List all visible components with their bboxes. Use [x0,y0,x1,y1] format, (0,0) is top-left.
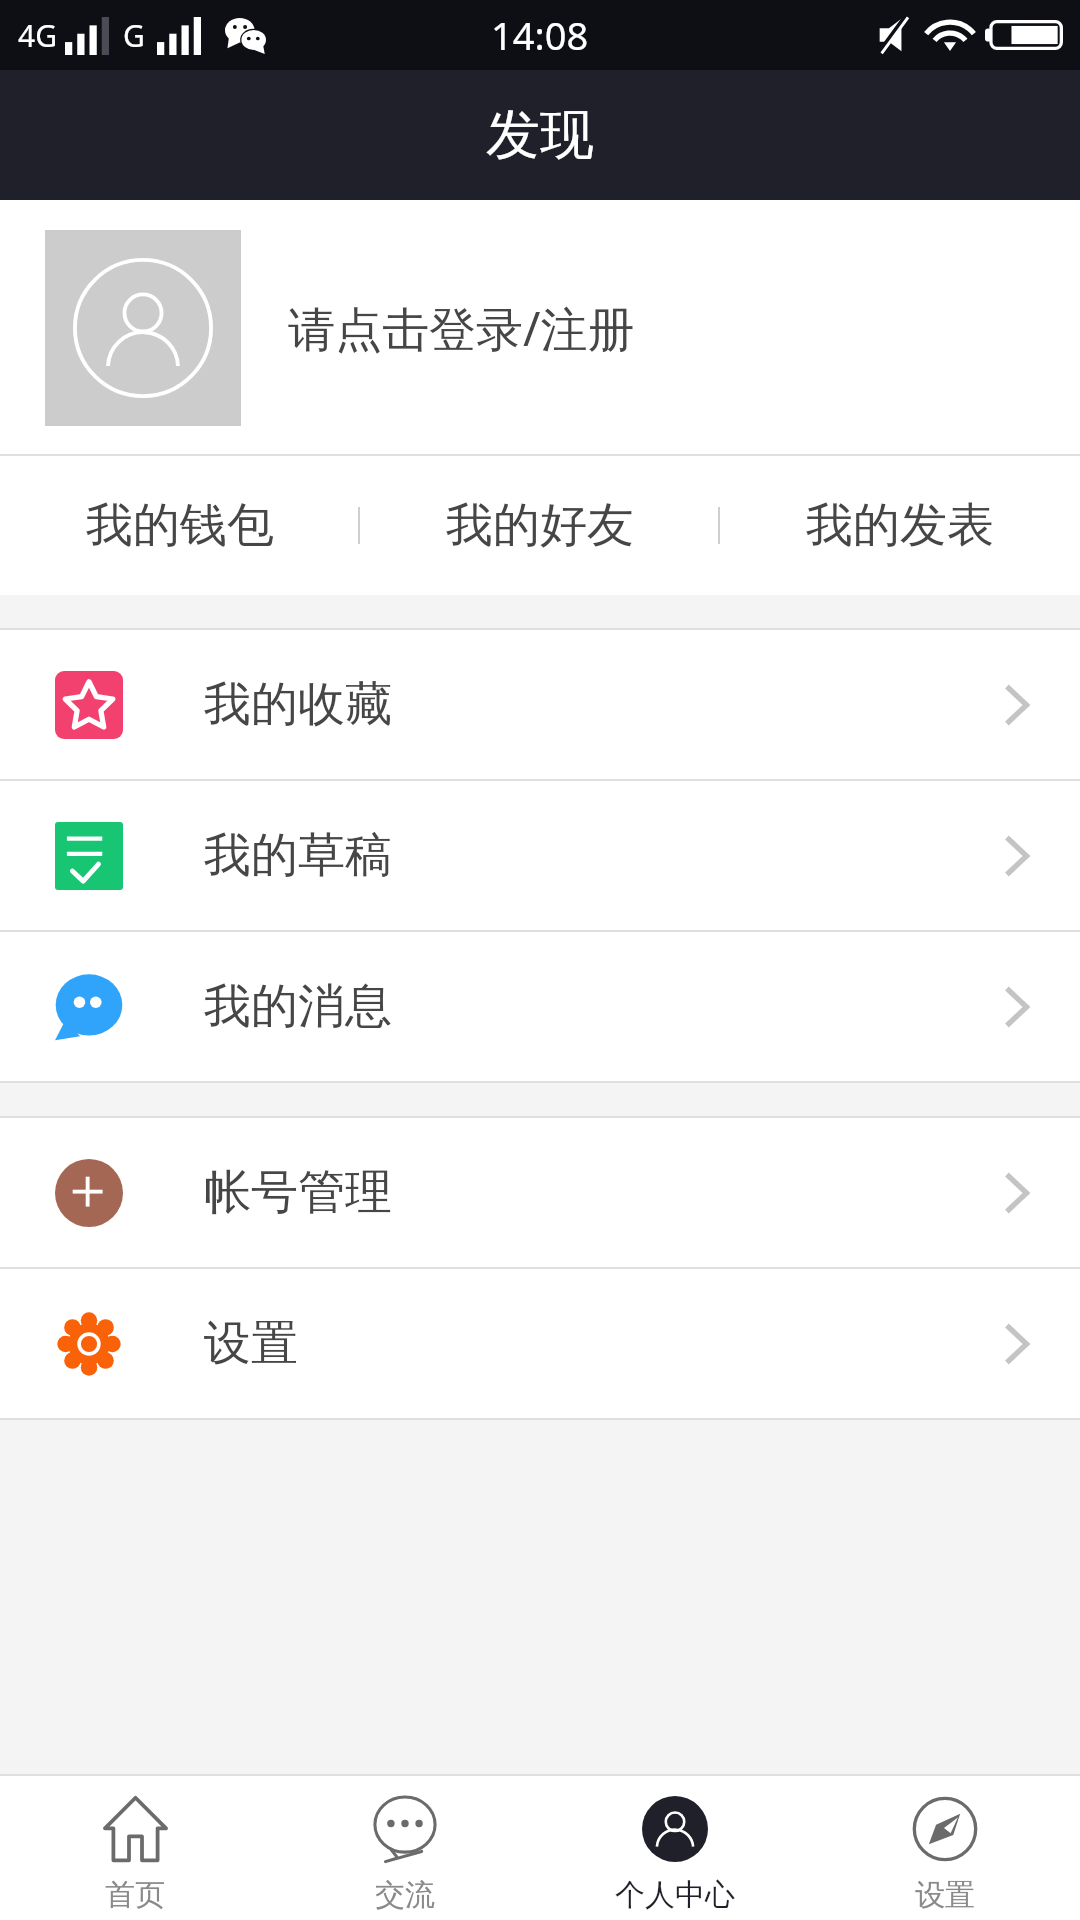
button[interactable]: Settings [0,1269,1080,1418]
staticText: 4G [18,15,57,56]
staticText: 发现 [486,101,594,169]
staticText: 设置 [915,1876,975,1914]
staticText: 我的消息 [204,977,392,1036]
staticText: 请点击登录/注册 [288,296,635,360]
staticText: 设置 [204,1314,298,1373]
staticText: 个人中心 [615,1876,735,1914]
staticText: 我的收藏 [204,675,392,734]
staticText: 我的草稿 [204,826,392,885]
staticText: 我的好友 [446,496,634,555]
button[interactable]: Tap to log in or register [0,200,1080,456]
button[interactable]: My messages [0,932,1080,1081]
button[interactable]: Account management [0,1118,1080,1267]
staticText: 交流 [375,1876,435,1914]
staticText: 帐号管理 [204,1163,392,1222]
button[interactable]: My favourites [0,630,1080,779]
staticText: 首页 [105,1876,165,1914]
button[interactable]: 设置 [810,1776,1080,1920]
staticText: 我的钱包 [86,496,274,555]
staticText: G [123,15,145,56]
button[interactable]: My drafts [0,781,1080,930]
staticText: 我的发表 [806,496,994,555]
button[interactable]: 个人中心 [540,1776,810,1920]
staticText: 14:08 [491,9,589,61]
button[interactable]: 我的钱包 [0,456,360,595]
button[interactable]: 我的好友 [360,456,720,595]
button[interactable]: 首页 [0,1776,270,1920]
button[interactable]: 交流 [270,1776,540,1920]
button[interactable]: 我的发表 [720,456,1080,595]
